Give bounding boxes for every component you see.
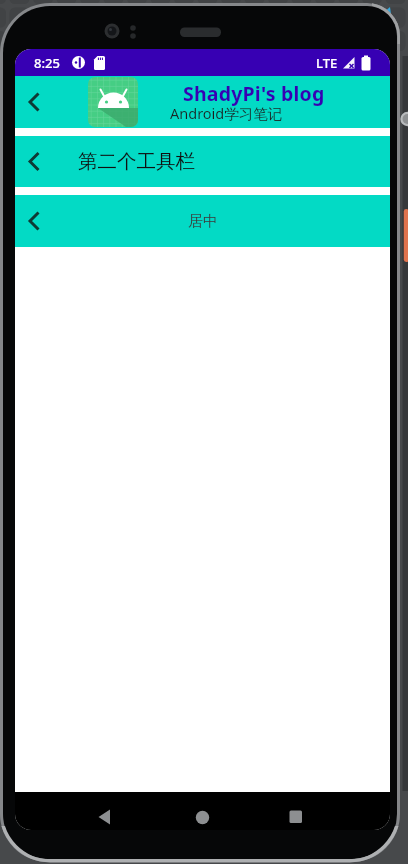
button[interactable]: [195, 810, 210, 825]
button[interactable]: [97, 809, 113, 825]
staticText: Android学习笔记: [170, 103, 283, 123]
staticText: 8:25: [34, 54, 60, 72]
button[interactable]: [15, 136, 59, 187]
staticText: 居中: [188, 212, 218, 231]
button[interactable]: [15, 76, 59, 128]
button[interactable]: [289, 810, 303, 824]
staticText: LTE: [316, 54, 338, 72]
button[interactable]: [15, 195, 59, 247]
staticText: 第二个工具栏: [78, 149, 195, 174]
staticText: ShadyPi's blog: [183, 80, 325, 107]
